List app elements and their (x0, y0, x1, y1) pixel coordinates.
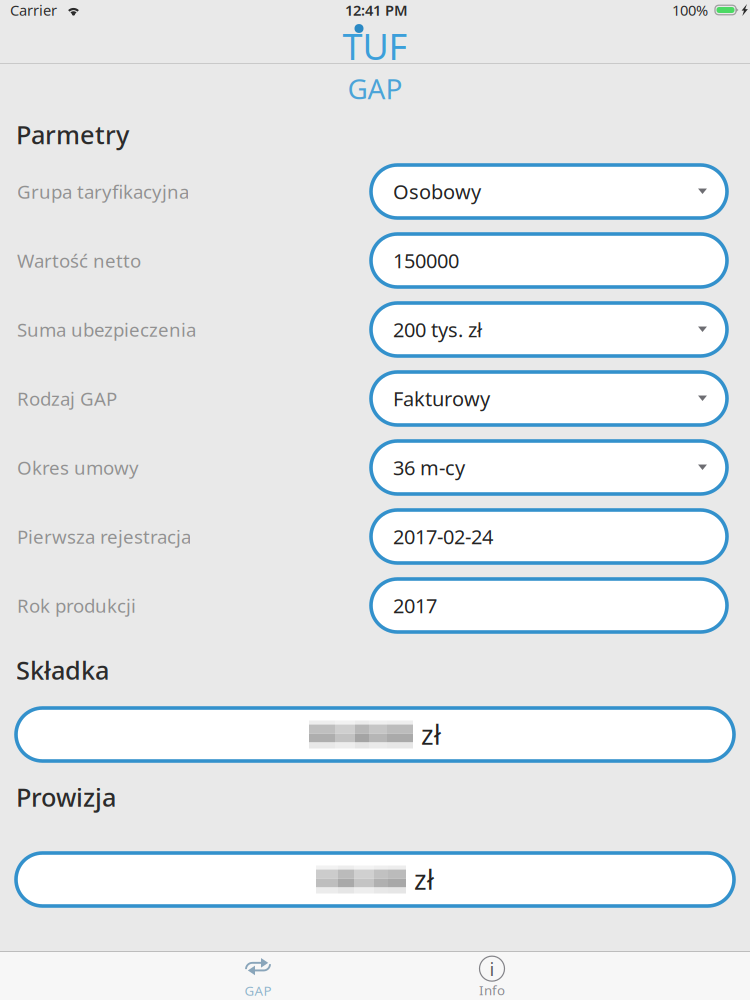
staticText: zł (414, 862, 434, 897)
button[interactable]: i (375, 952, 609, 1000)
staticText: Carrier (10, 0, 57, 20)
staticText: Okres umowy (17, 455, 139, 480)
staticText: Prowizja (16, 780, 116, 814)
staticText: Pierwsza rejestracja (17, 524, 191, 549)
button[interactable]: 36 m-cy (371, 441, 727, 494)
staticText: Składka (16, 653, 109, 687)
staticText: GAP (244, 982, 271, 999)
staticText: i (489, 956, 494, 981)
button[interactable]: zł (16, 853, 734, 906)
staticText: Wartość netto (17, 248, 141, 273)
button[interactable]: 150000 (371, 234, 727, 287)
staticText: Fakturowy (393, 385, 490, 412)
button[interactable]: 2017-02-24 (371, 510, 727, 563)
staticText: 200 tys. zł (393, 316, 482, 343)
button[interactable]: Osobowy (371, 165, 727, 218)
staticText: Parmetry (16, 118, 129, 151)
staticText: Osobowy (393, 178, 481, 205)
staticText: zł (421, 717, 441, 752)
staticText: 2017-02-24 (393, 523, 493, 550)
button[interactable]: GAP (141, 952, 375, 1000)
staticText: TUF (342, 22, 407, 70)
staticText: Suma ubezpieczenia (17, 317, 196, 342)
staticText: Rodzaj GAP (17, 386, 117, 411)
button[interactable]: zł (16, 708, 734, 761)
button[interactable]: 200 tys. zł (371, 303, 727, 356)
staticText: 100% (672, 0, 708, 20)
staticText: 12:41 PM (345, 0, 408, 20)
staticText: 2017 (393, 592, 437, 619)
staticText: GAP (347, 70, 402, 107)
staticText: Rok produkcji (17, 593, 136, 618)
staticText: Info (479, 981, 505, 999)
staticText: 150000 (393, 247, 459, 274)
button[interactable]: 2017 (371, 579, 727, 632)
staticText: 36 m-cy (393, 454, 465, 481)
button[interactable]: Fakturowy (371, 372, 727, 425)
staticText: Grupa taryfikacyjna (17, 179, 189, 204)
